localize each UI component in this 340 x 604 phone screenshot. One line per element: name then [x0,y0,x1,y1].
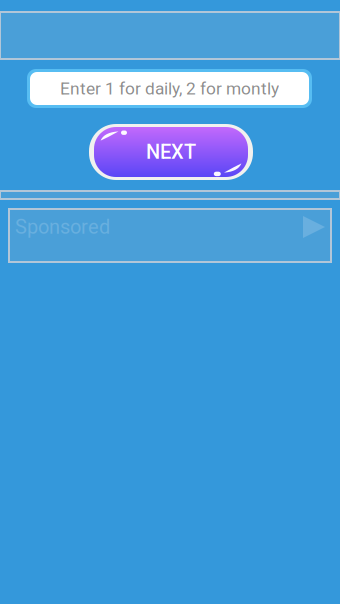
staticText: NEXT [146,140,196,164]
staticText: Enter 1 for daily, 2 for montly [60,78,279,99]
button[interactable]: NEXT [89,124,253,180]
staticText: Sponsored [15,215,110,239]
